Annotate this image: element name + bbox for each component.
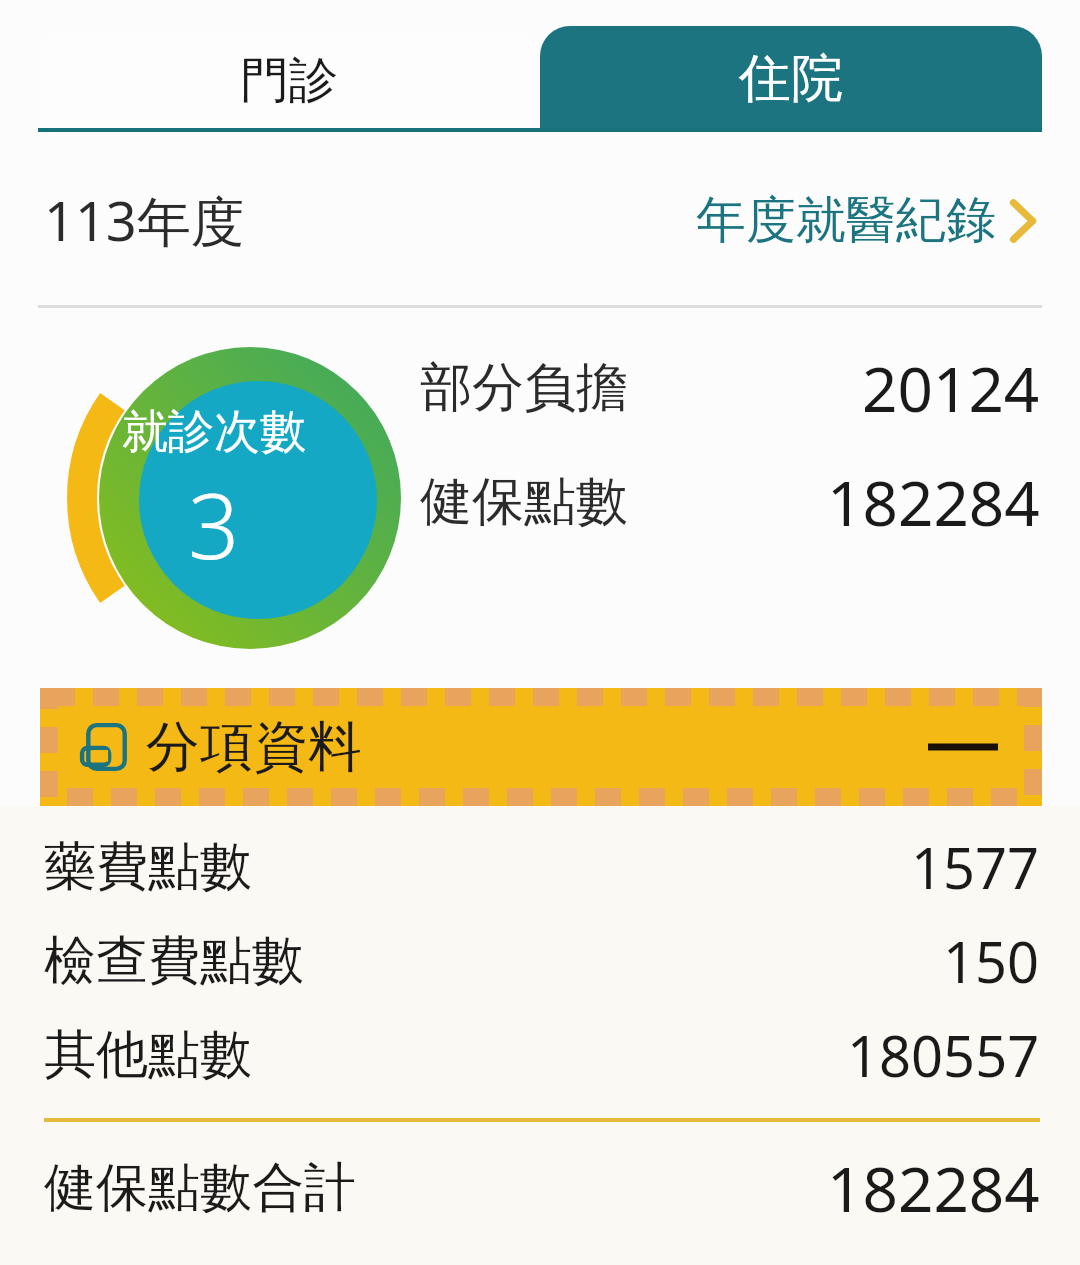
staticText: 180557: [847, 1017, 1040, 1093]
staticText: 健保點數合計: [44, 1155, 356, 1221]
staticText: 1577: [911, 829, 1040, 905]
staticText: 部分負擔: [420, 355, 628, 421]
staticText: 住院: [739, 46, 843, 112]
button[interactable]: 年度就醫紀錄: [692, 181, 1042, 260]
button[interactable]: 其他點數: [44, 1008, 1040, 1102]
button[interactable]: 部分負擔: [420, 342, 1040, 434]
staticText: 藥費點數: [44, 834, 252, 900]
staticText: 就診次數: [122, 403, 306, 461]
other: Collapse: [928, 737, 998, 757]
button[interactable]: 分項資料: [40, 688, 1042, 806]
button[interactable]: 健保點數合計: [44, 1140, 1040, 1236]
staticText: 年度就醫紀錄: [696, 189, 996, 252]
button[interactable]: 藥費點數: [44, 820, 1040, 914]
staticText: 健保點數: [420, 469, 628, 535]
staticText: 20124: [862, 346, 1040, 430]
staticText: 其他點數: [44, 1022, 252, 1088]
staticText: 3: [188, 463, 240, 586]
button[interactable]: 住院: [540, 26, 1042, 132]
staticText: 113年度: [44, 183, 245, 257]
staticText: 182284: [827, 1146, 1040, 1230]
staticText: 檢查費點數: [44, 928, 304, 994]
staticText: 分項資料: [146, 713, 362, 781]
staticText: 150: [943, 923, 1040, 999]
button[interactable]: 門診: [38, 30, 540, 132]
staticText: 門診: [240, 50, 338, 112]
staticText: 182284: [827, 460, 1040, 544]
button[interactable]: 檢查費點數: [44, 914, 1040, 1008]
button[interactable]: 健保點數: [420, 456, 1040, 548]
